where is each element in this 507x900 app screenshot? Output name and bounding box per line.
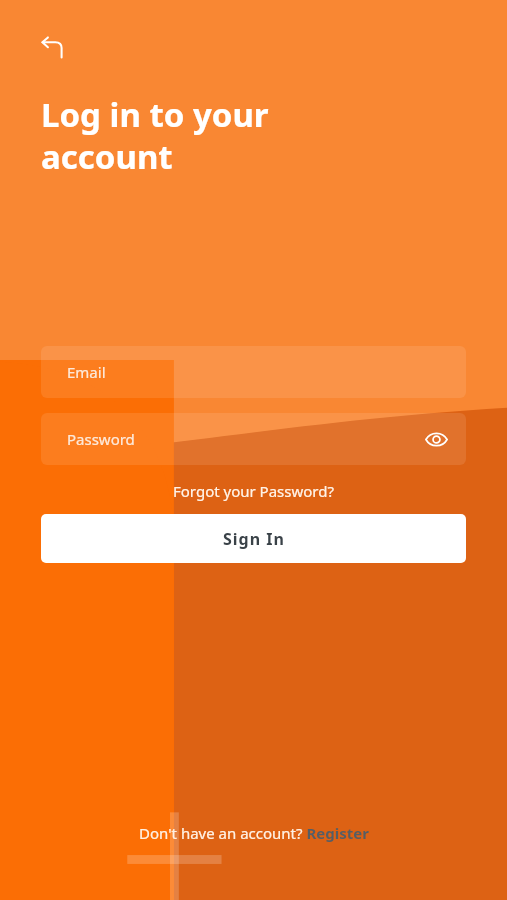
button[interactable]: Don't have an account? Register xyxy=(133,821,375,845)
button[interactable]: Show password xyxy=(416,419,456,459)
staticText: Log in to your account xyxy=(41,92,269,179)
button[interactable]: Password xyxy=(41,413,466,465)
button[interactable]: Email xyxy=(41,346,466,398)
staticText: Email xyxy=(67,362,106,382)
button[interactable]: Sign In xyxy=(41,514,466,563)
button[interactable]: Back xyxy=(30,26,74,70)
button[interactable]: Forgot your Password? xyxy=(167,479,340,503)
staticText: Forgot your Password? xyxy=(173,481,334,501)
staticText: Sign In xyxy=(223,528,285,550)
staticText: Don't have an account? Register xyxy=(139,823,369,843)
staticText: Password xyxy=(67,429,135,449)
